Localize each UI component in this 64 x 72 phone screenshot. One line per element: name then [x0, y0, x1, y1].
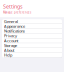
staticText: Settings [3, 3, 23, 10]
staticText: Help [4, 52, 12, 58]
staticText: Storage [4, 43, 17, 48]
staticText: Notifications [4, 28, 25, 34]
staticText: About [4, 47, 14, 53]
staticText: Account [4, 38, 18, 43]
staticText: Privacy [4, 33, 17, 38]
staticText: Manage preferences [3, 11, 31, 14]
staticText: General [4, 19, 18, 24]
staticText: Appearance [4, 23, 25, 29]
